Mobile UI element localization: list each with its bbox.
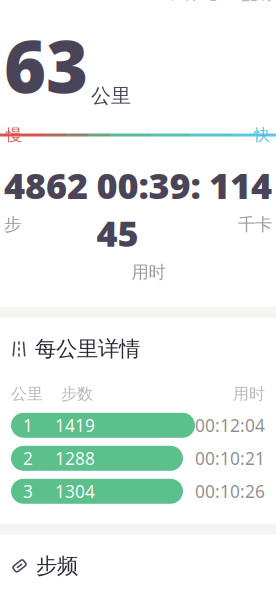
staticText: 00:12:04	[195, 414, 265, 437]
staticText: 17°C	[182, 0, 217, 6]
staticText: 23%	[241, 0, 272, 6]
button[interactable]: Collapse	[11, 39, 55, 83]
staticText: 3	[23, 480, 33, 503]
staticText: 公里	[91, 83, 131, 108]
staticText: 步数	[61, 384, 93, 404]
staticText: 1288	[55, 447, 95, 470]
staticText: 公里	[11, 384, 43, 404]
staticText: 慢	[6, 125, 22, 145]
staticText: 4862	[4, 161, 88, 209]
staticText: 用时	[131, 262, 165, 283]
staticText: 步	[4, 214, 21, 235]
staticText: 00:10:21	[195, 447, 265, 470]
staticText: 用时	[233, 384, 265, 404]
staticText: 00:10:26	[195, 480, 265, 503]
staticText: 2	[23, 447, 33, 470]
staticText: 114	[209, 161, 272, 209]
staticText: 每公里详情	[35, 336, 140, 362]
staticText: 快	[254, 125, 270, 145]
staticText: 步频	[36, 553, 78, 579]
staticText: 1419	[55, 414, 95, 437]
staticText: 1	[23, 414, 33, 437]
staticText: 00:39:45	[96, 161, 200, 257]
staticText: 千卡	[238, 214, 272, 235]
staticText: 1304	[55, 480, 95, 503]
staticText: 3.63	[4, 0, 88, 113]
